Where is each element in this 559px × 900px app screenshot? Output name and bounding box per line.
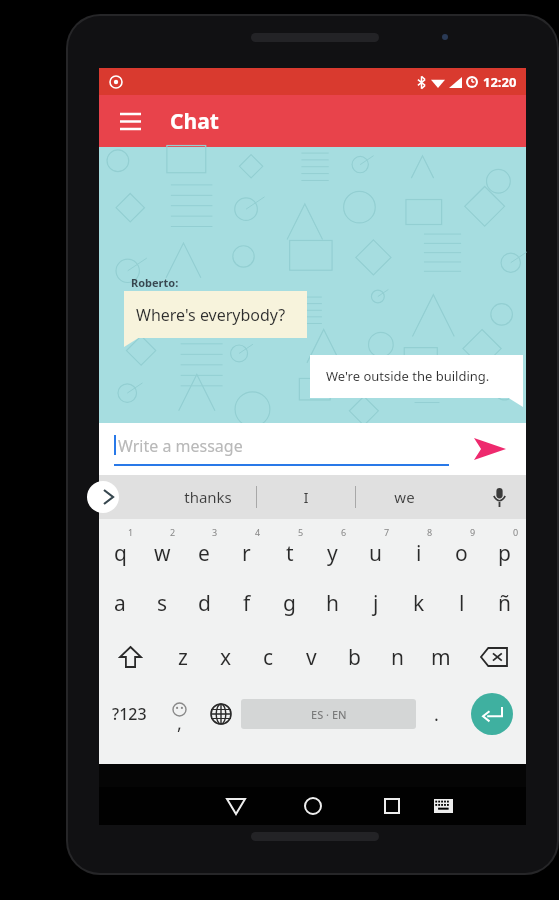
button[interactable]: v bbox=[290, 630, 333, 684]
button[interactable]: c bbox=[247, 630, 290, 684]
button[interactable]: 1 bbox=[99, 524, 141, 576]
staticText: We're outside the building. bbox=[326, 367, 490, 385]
staticText: 8 bbox=[427, 526, 433, 538]
staticText: 0 bbox=[513, 526, 519, 538]
button[interactable]: Open navigation menu bbox=[115, 106, 145, 136]
button[interactable]: d bbox=[183, 576, 225, 630]
button[interactable]: s bbox=[141, 576, 183, 630]
button[interactable]: 5 bbox=[268, 524, 311, 576]
staticText: t bbox=[286, 539, 294, 568]
button[interactable]: g bbox=[268, 576, 311, 630]
button[interactable]: I bbox=[258, 475, 354, 519]
button[interactable]: l bbox=[440, 576, 483, 630]
staticText: Chat bbox=[170, 107, 219, 136]
button[interactable]: j bbox=[354, 576, 397, 630]
staticText: thanks bbox=[184, 487, 232, 507]
staticText: 6 bbox=[341, 526, 347, 538]
button[interactable]: 8 bbox=[397, 524, 440, 576]
staticText: ES · EN bbox=[311, 707, 347, 722]
staticText: y bbox=[327, 539, 338, 568]
button[interactable]: 7 bbox=[354, 524, 397, 576]
button[interactable]: f bbox=[225, 576, 268, 630]
button[interactable]: Emoji bbox=[159, 684, 200, 744]
staticText: 5 bbox=[298, 526, 304, 538]
button[interactable]: we bbox=[356, 475, 452, 519]
button[interactable]: More suggestions bbox=[87, 481, 119, 513]
button[interactable]: 2 bbox=[141, 524, 183, 576]
button[interactable]: 4 bbox=[225, 524, 268, 576]
button[interactable]: ES · EN bbox=[241, 699, 416, 729]
staticText: k bbox=[413, 589, 425, 618]
button[interactable]: Change keyboard language bbox=[200, 684, 241, 744]
button[interactable]: Enter bbox=[471, 693, 513, 735]
staticText: . bbox=[434, 702, 439, 727]
staticText: f bbox=[243, 589, 251, 618]
button[interactable]: Backspace bbox=[462, 630, 526, 684]
staticText: Write a message bbox=[118, 435, 243, 457]
staticText: i bbox=[416, 539, 422, 568]
staticText: d bbox=[198, 589, 211, 618]
button[interactable]: b bbox=[333, 630, 376, 684]
staticText: r bbox=[242, 539, 251, 568]
staticText: s bbox=[157, 589, 168, 618]
button[interactable]: Send message bbox=[468, 427, 512, 471]
staticText: 3 bbox=[212, 526, 218, 538]
staticText: m bbox=[431, 643, 451, 672]
button[interactable]: 3 bbox=[183, 524, 225, 576]
staticText: u bbox=[369, 539, 382, 568]
button[interactable]: Shift bbox=[99, 630, 162, 684]
staticText: 2 bbox=[170, 526, 176, 538]
button[interactable]: h bbox=[311, 576, 354, 630]
button[interactable]: thanks bbox=[160, 475, 256, 519]
button[interactable]: ?123 bbox=[99, 684, 159, 744]
staticText: n bbox=[391, 643, 404, 672]
button[interactable]: 0 bbox=[483, 524, 526, 576]
button[interactable]: . bbox=[416, 684, 457, 744]
staticText: x bbox=[220, 643, 232, 672]
staticText: e bbox=[198, 539, 210, 568]
button[interactable]: z bbox=[162, 630, 204, 684]
staticText: 9 bbox=[470, 526, 476, 538]
button[interactable]: 9 bbox=[440, 524, 483, 576]
staticText: 1 bbox=[128, 526, 134, 538]
button[interactable]: k bbox=[397, 576, 440, 630]
button[interactable]: Back bbox=[211, 787, 261, 825]
staticText: I bbox=[303, 487, 309, 507]
staticText: v bbox=[306, 643, 317, 672]
button[interactable]: Voice input bbox=[482, 480, 516, 514]
staticText: , bbox=[177, 711, 182, 736]
staticText: l bbox=[459, 589, 465, 618]
staticText: b bbox=[348, 643, 361, 672]
staticText: a bbox=[114, 589, 126, 618]
staticText: we bbox=[394, 487, 415, 507]
staticText: w bbox=[154, 539, 171, 568]
staticText: q bbox=[114, 539, 127, 568]
button[interactable]: a bbox=[99, 576, 141, 630]
staticText: p bbox=[498, 539, 511, 568]
staticText: h bbox=[326, 589, 339, 618]
staticText: Roberto: bbox=[131, 275, 179, 290]
staticText: z bbox=[178, 643, 188, 672]
staticText: 4 bbox=[255, 526, 261, 538]
staticText: o bbox=[455, 539, 468, 568]
button[interactable]: Home bbox=[288, 787, 338, 825]
staticText: c bbox=[263, 643, 274, 672]
staticText: Where's everybody? bbox=[136, 304, 286, 326]
staticText: j bbox=[373, 589, 379, 618]
button[interactable]: ñ bbox=[483, 576, 526, 630]
staticText: ?123 bbox=[112, 703, 147, 725]
staticText: ñ bbox=[498, 589, 511, 618]
staticText: g bbox=[283, 589, 296, 618]
button[interactable]: Hide keyboard bbox=[419, 787, 467, 825]
button[interactable]: n bbox=[376, 630, 419, 684]
button[interactable]: m bbox=[419, 630, 462, 684]
button[interactable]: Recent apps bbox=[367, 787, 417, 825]
button[interactable]: 6 bbox=[311, 524, 354, 576]
staticText: 7 bbox=[384, 526, 390, 538]
button[interactable]: x bbox=[204, 630, 247, 684]
staticText: 12:20 bbox=[483, 73, 517, 91]
